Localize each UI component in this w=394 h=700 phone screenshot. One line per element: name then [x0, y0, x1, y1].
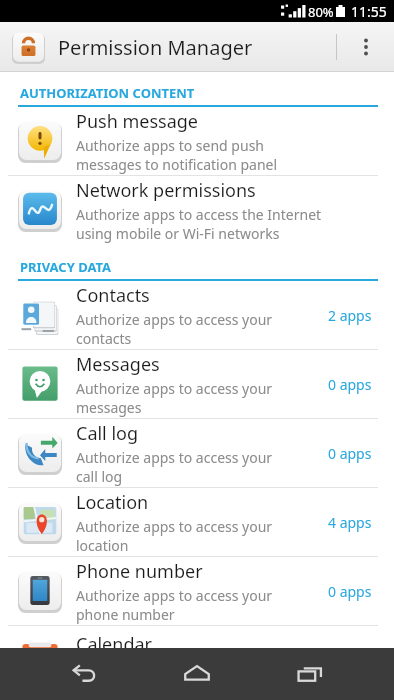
staticText: 4 apps [328, 513, 372, 532]
button[interactable]: More options [338, 22, 394, 72]
staticText: 0 apps [328, 582, 372, 601]
button[interactable]: Recent apps [281, 648, 339, 700]
staticText: phone number [76, 605, 175, 624]
button[interactable]: Push message [0, 107, 394, 175]
staticText: 11:55 [351, 2, 387, 21]
button[interactable]: Back [55, 648, 113, 700]
staticText: Authorize apps to access your [76, 379, 273, 398]
staticText: Network permissions [76, 178, 256, 203]
staticText: 80% [308, 3, 334, 21]
button[interactable]: Network permissions [0, 176, 394, 244]
staticText: 2 apps [328, 306, 372, 325]
staticText: messages [76, 398, 142, 417]
staticText: Call log [76, 421, 139, 446]
staticText: Messages [76, 352, 160, 377]
button[interactable]: Calendar [0, 626, 394, 666]
staticText: contacts [76, 329, 132, 348]
staticText: Authorize apps to access your [76, 310, 273, 329]
button[interactable]: Contacts [0, 281, 394, 349]
button[interactable]: Phone number [0, 557, 394, 625]
staticText: 0 apps [328, 444, 372, 463]
staticText: Location [76, 490, 149, 515]
staticText: AUTHORIZATION CONTENT [20, 84, 195, 102]
staticText: 0 apps [328, 375, 372, 394]
button[interactable]: Call log [0, 419, 394, 487]
staticText: location [76, 536, 129, 555]
staticText: Phone number [76, 559, 203, 584]
staticText: Authorize apps to access your [76, 586, 273, 605]
staticText: call log [76, 467, 123, 486]
staticText: Permission Manager [58, 34, 253, 61]
staticText: Push message [76, 109, 198, 134]
button[interactable]: Messages [0, 350, 394, 418]
staticText: using mobile or Wi-Fi networks [76, 224, 280, 243]
staticText: Contacts [76, 283, 150, 308]
staticText: messages to notification panel [76, 155, 278, 174]
staticText: Authorize apps to send push [76, 136, 264, 155]
staticText: Authorize apps to access your [76, 517, 273, 536]
button[interactable]: Location [0, 488, 394, 556]
staticText: Authorize apps to access the Internet [76, 205, 322, 224]
button[interactable]: Home [168, 648, 226, 700]
staticText: PRIVACY DATA [20, 258, 112, 276]
staticText: Calendar [76, 632, 152, 657]
staticText: Authorize apps to access your [76, 448, 273, 467]
